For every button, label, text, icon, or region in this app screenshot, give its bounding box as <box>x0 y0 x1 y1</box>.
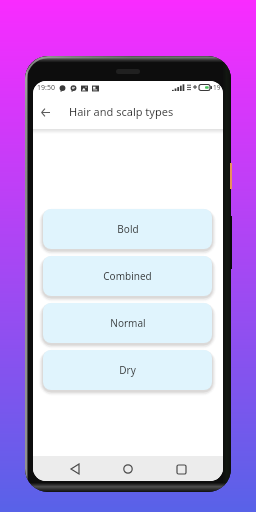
button[interactable]: Back <box>33 100 57 124</box>
button[interactable]: Normal <box>43 303 212 343</box>
staticText: 19:50 <box>37 83 55 93</box>
button[interactable]: Recent apps <box>170 458 192 480</box>
staticText: Hair and scalp types <box>69 104 174 119</box>
button[interactable]: Back <box>64 458 86 480</box>
button[interactable]: Combined <box>43 256 212 296</box>
staticText: Normal <box>110 316 146 330</box>
button[interactable]: Dry <box>43 350 212 390</box>
staticText: 19 <box>213 83 221 92</box>
button[interactable]: Bold <box>43 209 212 249</box>
button[interactable]: Home <box>117 458 139 480</box>
staticText: Dry <box>119 363 136 377</box>
staticText: Combined <box>103 269 152 283</box>
staticText: Bold <box>117 222 139 236</box>
